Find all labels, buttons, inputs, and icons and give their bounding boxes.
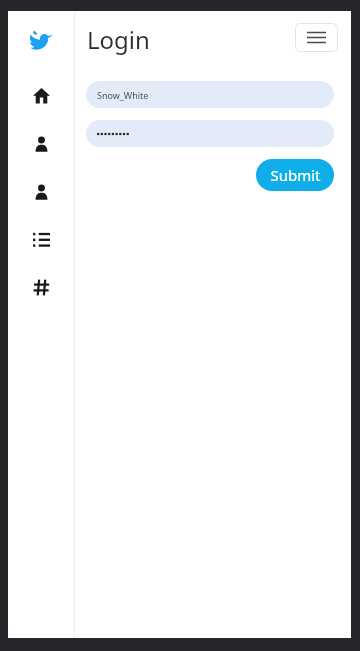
button[interactable]: Username field <box>86 81 334 108</box>
button[interactable]: Password field <box>86 120 334 147</box>
button[interactable]: Lists <box>26 224 56 254</box>
button[interactable]: Profile <box>26 128 56 158</box>
button[interactable]: Twitter home <box>21 21 61 61</box>
staticText: Submit <box>270 165 321 185</box>
button[interactable]: Menu <box>295 23 338 52</box>
button[interactable]: Submit <box>256 159 334 191</box>
staticText: Login <box>87 23 150 56</box>
button[interactable]: Account <box>26 176 56 206</box>
button[interactable]: Home <box>26 80 56 110</box>
staticText: Snow_White <box>97 89 149 101</box>
button[interactable]: Explore <box>26 272 56 302</box>
